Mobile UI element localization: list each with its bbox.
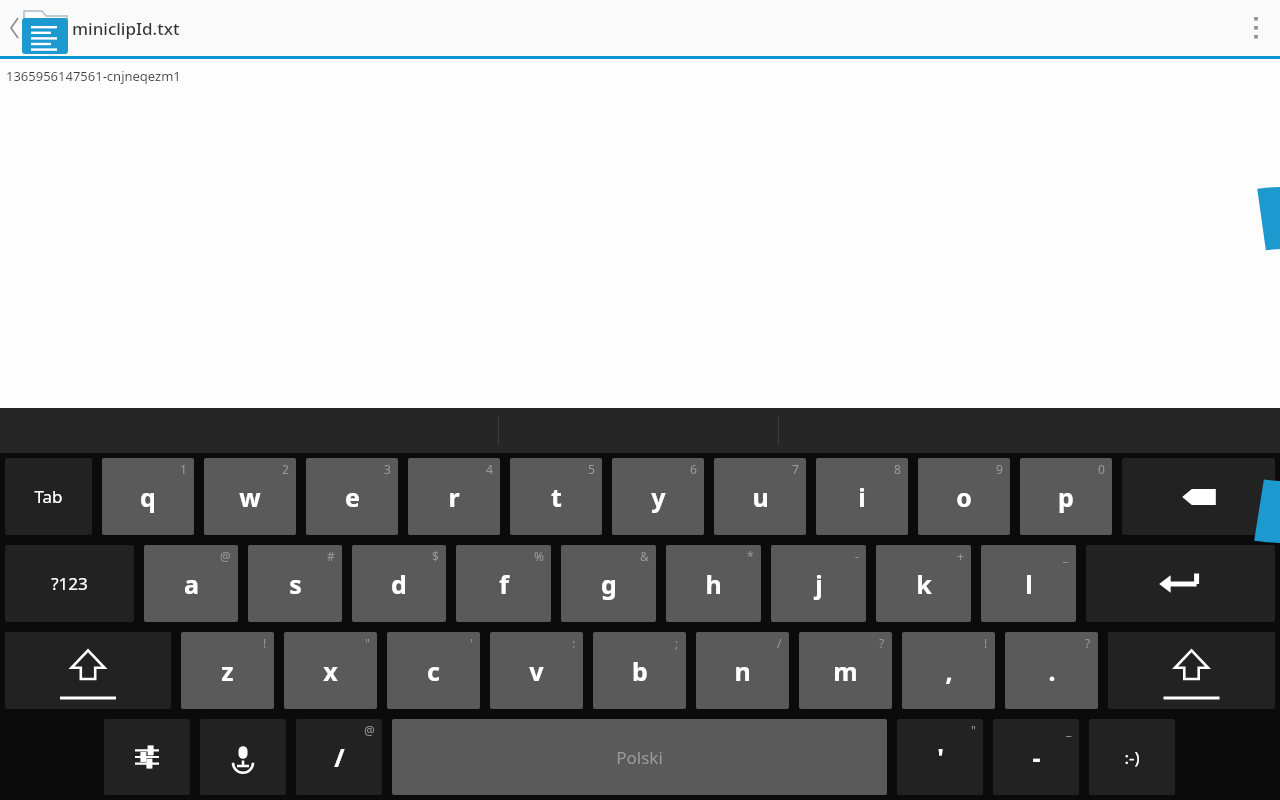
button[interactable]: " [284,632,377,709]
staticText: d [391,567,407,601]
staticText: n [734,654,751,688]
button[interactable]: % [456,545,551,622]
button[interactable]: 1 [102,458,194,535]
button[interactable]: ? [799,632,892,709]
staticText: . [1048,654,1056,688]
staticText: % [534,548,544,564]
staticText: 1365956147561-cnjneqezm1 [6,67,181,85]
button[interactable]: ! [181,632,274,709]
staticText: 1 [180,461,187,477]
staticText: 6 [690,461,697,477]
staticText: / [334,740,345,774]
staticText: Polski [616,746,663,769]
staticText: ! [984,635,988,651]
button[interactable]: " [897,719,983,795]
staticText: 5 [588,461,595,477]
button[interactable]: Shift [5,632,171,709]
staticText: - [1032,740,1041,774]
button[interactable]: More options [1232,4,1280,52]
staticText: h [705,567,722,601]
staticText: miniclipId.txt [72,17,180,40]
button[interactable]: :-) [1089,719,1175,795]
button[interactable]: Tab [5,458,92,535]
button[interactable]: 4 [408,458,500,535]
staticText: 9 [996,461,1003,477]
button[interactable]: ' [387,632,480,709]
staticText: m [833,654,858,688]
button[interactable]: * [666,545,761,622]
staticText: $ [432,548,439,564]
staticText: & [640,548,649,564]
staticText: ?123 [51,572,88,595]
button[interactable]: / [696,632,789,709]
button[interactable]: Keyboard settings [104,719,190,795]
button[interactable]: 7 [714,458,806,535]
staticText: / [777,635,782,651]
button[interactable]: 2 [204,458,296,535]
button[interactable]: - [771,545,866,622]
button[interactable]: + [876,545,971,622]
staticText: r [448,480,460,514]
staticText: g [601,567,617,601]
staticText: : [572,635,576,651]
button[interactable]: Up [4,4,66,52]
staticText: # [327,548,335,564]
staticText: 4 [486,461,493,477]
staticText: o [956,480,972,514]
staticText: p [1058,480,1074,514]
button[interactable]: ?123 [5,545,134,622]
button[interactable]: @ [296,719,382,795]
staticText: 8 [894,461,901,477]
staticText: i [858,480,866,514]
button[interactable]: # [248,545,342,622]
staticText: 3 [384,461,391,477]
button[interactable]: ; [593,632,686,709]
staticText: e [345,480,360,514]
staticText: f [499,567,509,601]
button[interactable]: 8 [816,458,908,535]
staticText: x [323,654,338,688]
staticText: @ [364,722,375,738]
staticText: ! [263,635,267,651]
button[interactable]: Delete [1122,458,1275,535]
button[interactable]: _ [993,719,1079,795]
staticText: q [140,480,156,514]
button[interactable]: Enter [1086,545,1275,622]
button[interactable]: 3 [306,458,398,535]
button[interactable]: @ [144,545,238,622]
button[interactable]: Voice input [200,719,286,795]
button[interactable]: Polski [392,719,887,795]
staticText: _ [1066,722,1072,738]
staticText: 7 [792,461,799,477]
staticText: :-) [1124,746,1140,769]
staticText: , [945,654,953,688]
staticText: z [221,654,234,688]
staticText: 2 [282,461,289,477]
staticText: _ [1063,548,1069,564]
button[interactable]: 5 [510,458,602,535]
staticText: Tab [34,485,63,508]
staticText: u [752,480,769,514]
button[interactable]: 9 [918,458,1010,535]
staticText: * [747,548,754,564]
staticText: ; [675,635,679,651]
button[interactable]: ! [902,632,995,709]
staticText: a [184,567,199,601]
staticText: ? [1085,635,1091,651]
button[interactable]: 0 [1020,458,1112,535]
button[interactable]: & [561,545,656,622]
button[interactable]: ? [1005,632,1098,709]
button[interactable]: Shift [1108,632,1275,709]
button[interactable]: _ [981,545,1076,622]
staticText: w [239,480,261,514]
staticText: @ [220,548,231,564]
staticText: - [855,548,859,564]
button[interactable]: $ [352,545,446,622]
staticText: ' [470,635,473,651]
button[interactable]: : [490,632,583,709]
button[interactable]: 6 [612,458,704,535]
staticText: 0 [1098,461,1105,477]
